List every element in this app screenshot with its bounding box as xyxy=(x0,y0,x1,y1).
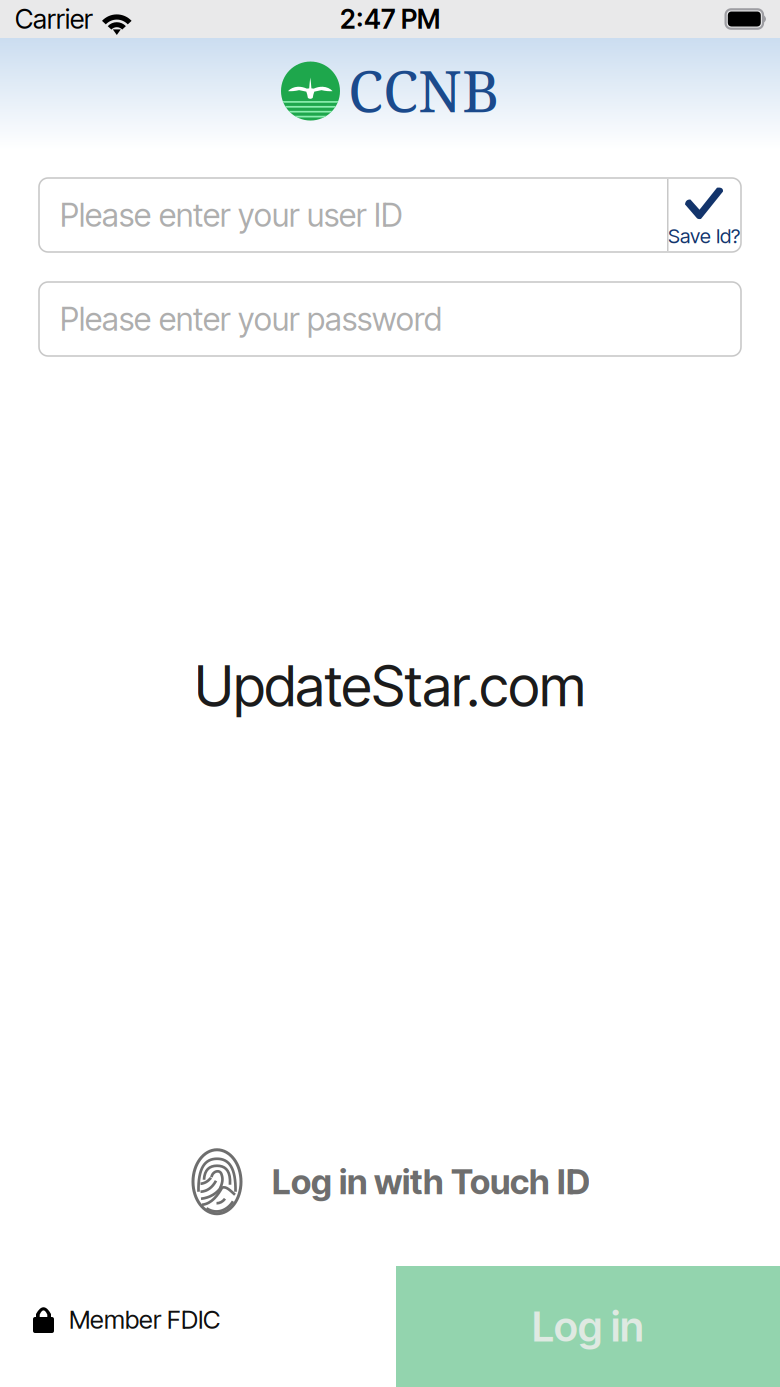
staticText: UpdateStar.com xyxy=(194,652,585,720)
button[interactable]: Log in with Touch ID xyxy=(190,1148,590,1216)
staticText: Save Id? xyxy=(668,224,740,248)
staticText: Please enter your password xyxy=(60,300,442,338)
staticText: CCNB xyxy=(348,51,499,129)
staticText: Carrier xyxy=(15,3,93,35)
staticText: Member FDIC xyxy=(69,1304,220,1335)
staticText: Log in xyxy=(532,1301,644,1351)
staticText: Log in with Touch ID xyxy=(272,1161,590,1203)
button[interactable]: Save Id? xyxy=(667,179,741,251)
button[interactable]: Log in xyxy=(396,1266,780,1387)
staticText: 2:47 PM xyxy=(340,3,440,35)
staticText: Please enter your user ID xyxy=(60,196,403,234)
